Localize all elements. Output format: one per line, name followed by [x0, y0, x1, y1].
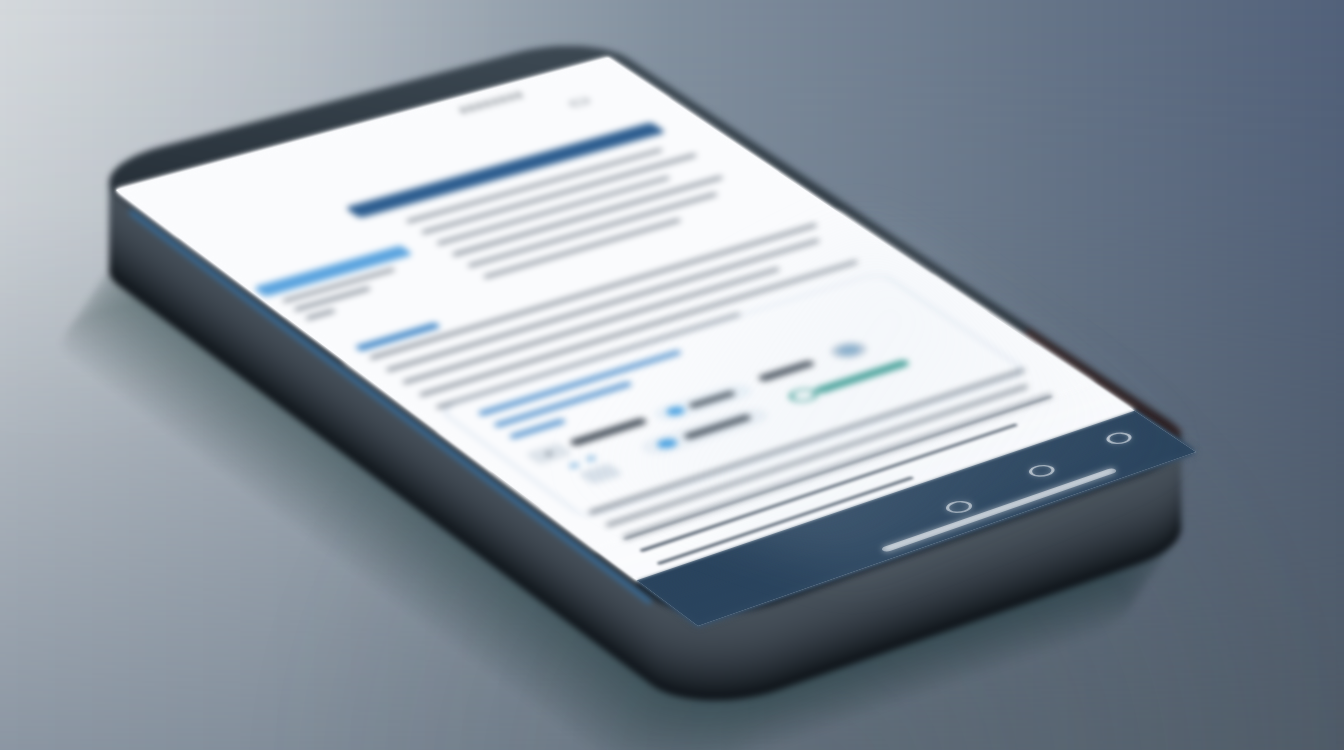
- button[interactable]: Details: [350, 319, 443, 352]
- button[interactable]: Share: [565, 432, 708, 486]
- button[interactable]: Attachment: [521, 419, 649, 468]
- button[interactable]: Overview: [249, 242, 415, 298]
- button[interactable]: Home: [636, 521, 870, 625]
- button[interactable]: Summary card: [435, 270, 1031, 520]
- button[interactable]: Verified: [753, 339, 891, 390]
- button[interactable]: Search: [810, 464, 1036, 564]
- button[interactable]: Profile: [643, 384, 760, 429]
- button[interactable]: Link: [704, 388, 837, 438]
- button[interactable]: Search: [340, 119, 669, 220]
- button[interactable]: Library: [975, 410, 1195, 506]
